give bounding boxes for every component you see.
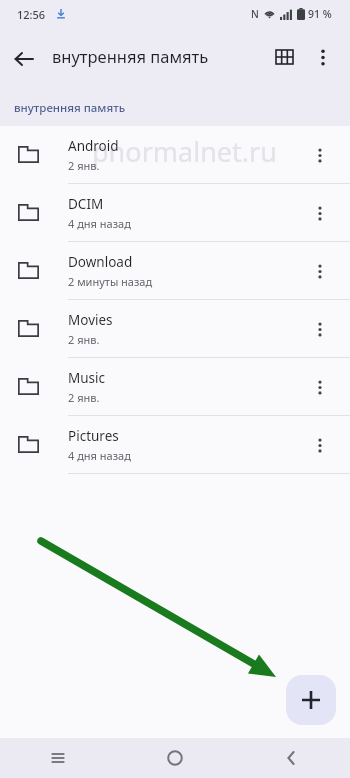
staticText: pnormalnet.ru (92, 133, 277, 170)
button[interactable]: Ещё (306, 40, 340, 74)
button[interactable]: DCIM (0, 184, 350, 241)
button[interactable]: Недавние (0, 738, 116, 778)
staticText: 12:56 (17, 7, 46, 22)
button[interactable]: Ещё (298, 423, 342, 467)
staticText: 2 янв. (68, 390, 100, 405)
staticText: Download (68, 253, 133, 271)
button[interactable]: Music (0, 358, 350, 415)
staticText: внутренняя память (52, 45, 209, 67)
button[interactable]: Movies (0, 300, 350, 357)
button[interactable]: Android (0, 126, 350, 183)
staticText: Music (68, 369, 106, 387)
button[interactable]: Добавить (286, 675, 336, 725)
button[interactable]: Главный экран (116, 738, 233, 778)
button[interactable]: Ещё (298, 365, 342, 409)
staticText: 91 % (308, 7, 332, 21)
staticText: Pictures (68, 427, 119, 445)
staticText: 4 дня назад (68, 448, 131, 463)
staticText: Android (68, 137, 119, 155)
button[interactable]: Ещё (298, 133, 342, 177)
button[interactable]: Ещё (298, 191, 342, 235)
staticText: Movies (68, 311, 113, 329)
staticText: 2 янв. (68, 332, 100, 347)
button[interactable]: Назад (6, 41, 42, 77)
button[interactable]: Назад (233, 738, 350, 778)
button[interactable]: Pictures (0, 416, 350, 473)
staticText: внутренняя память (14, 100, 126, 116)
staticText: 2 янв. (68, 158, 100, 173)
button[interactable]: Вид сеткой (267, 40, 301, 74)
button[interactable]: Download (0, 242, 350, 299)
button[interactable]: Ещё (298, 307, 342, 351)
staticText: N (251, 7, 259, 21)
staticText: 4 дня назад (68, 216, 131, 231)
button[interactable]: Ещё (298, 249, 342, 293)
staticText: 2 минуты назад (68, 274, 153, 289)
staticText: DCIM (68, 195, 104, 213)
